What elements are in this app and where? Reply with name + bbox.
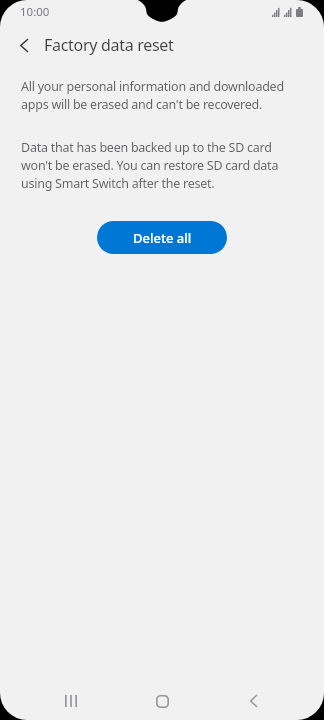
button[interactable]: Navigate up <box>0 29 48 61</box>
staticText: Data that has been backed up to the SD c… <box>21 139 303 192</box>
button[interactable]: Recent apps <box>25 682 117 720</box>
staticText: 10:00 <box>20 4 50 20</box>
staticText: Delete all <box>133 229 192 247</box>
staticText: Factory data reset <box>44 34 174 56</box>
button[interactable]: Home <box>117 682 208 720</box>
button[interactable]: Delete all <box>97 221 227 254</box>
staticText: All your personal information and downlo… <box>21 78 303 113</box>
button[interactable]: Back <box>208 682 299 720</box>
